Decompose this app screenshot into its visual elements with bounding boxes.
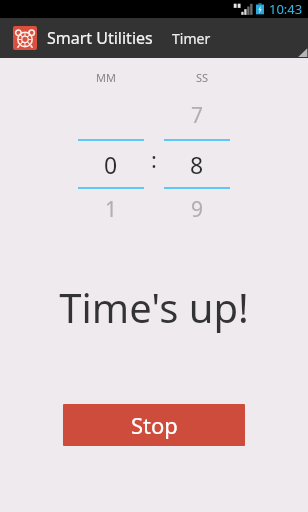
staticText: 10:43 xyxy=(269,0,303,18)
button[interactable]: Smart Utilities app icon xyxy=(13,26,37,50)
button[interactable]: 7 xyxy=(162,91,232,229)
staticText: Smart Utilities xyxy=(47,27,153,49)
staticText: Time's up! xyxy=(59,280,249,334)
staticText: 7 xyxy=(191,101,204,130)
staticText: Stop xyxy=(131,410,178,440)
staticText: : xyxy=(151,144,157,174)
staticText: 1 xyxy=(105,195,118,224)
staticText: Timer xyxy=(172,29,211,48)
button[interactable]: Timer xyxy=(170,18,213,58)
button[interactable]: More options xyxy=(294,44,308,58)
staticText: 0 xyxy=(104,149,118,180)
button[interactable]: 0 xyxy=(76,91,146,229)
staticText: SS xyxy=(196,70,209,85)
staticText: 9 xyxy=(191,195,204,224)
staticText: MM xyxy=(96,70,116,85)
staticText: 8 xyxy=(190,149,204,180)
button[interactable]: Stop xyxy=(63,404,245,446)
